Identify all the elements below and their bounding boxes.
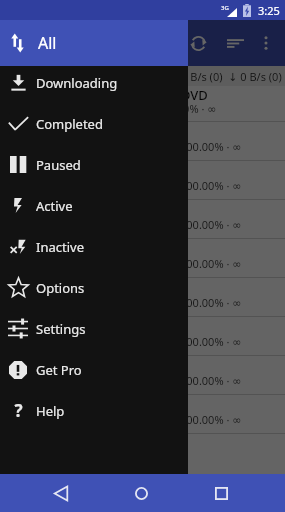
staticText: Completed [36,115,103,133]
staticText: Downloading [36,74,118,92]
staticText: Big Buck Bunny.mkv [20,166,147,184]
staticText: All [38,32,57,54]
button[interactable]: Settings [0,308,188,349]
staticText: 100.00% · ∞ [180,139,242,154]
button[interactable]: Options [0,267,188,308]
button[interactable]: Downloading [0,62,188,103]
button[interactable]: Back [21,474,101,512]
staticText: 100.00% · ∞ [180,295,242,310]
staticText: Big Buck Bunny.mkv [20,361,147,379]
staticText: Options [36,279,85,297]
staticText: ↑ 0 B/s (0) ↓ 0 B/s (0) [169,69,282,84]
button[interactable]: Big Buck Bunny.mkv [0,200,285,239]
staticText: Settings [36,320,86,338]
staticText: 100.00% · ∞ [180,217,242,232]
staticText: 100.00% · ∞ [180,334,242,349]
staticText: 3:25 [258,3,280,18]
staticText: Big Buck Bunny.mkv [20,205,147,223]
button[interactable]: Big Buck Bunny.mkv [0,356,285,395]
staticText: Big Buck Bunny.mkv [20,244,147,262]
button[interactable]: Big Buck Bunny.mkv [0,161,285,200]
staticText: Help [36,402,65,420]
button[interactable]: All [0,20,188,66]
staticText: 100.00% · ∞ [180,412,242,427]
staticText: Paused [36,156,81,174]
staticText: ? [14,399,23,422]
button[interactable]: Completed [0,103,188,144]
staticText: 100.00% · ∞ [155,101,217,116]
staticText: Get Pro [36,361,82,379]
button[interactable]: Big Buck Bunny.mkv [0,395,285,434]
button[interactable]: Get Pro [0,349,188,390]
button[interactable]: Close navigation drawer [0,20,285,474]
staticText: Big Buck Bunny.mkv [20,283,147,301]
button[interactable]: ? [0,390,188,431]
button[interactable]: Big Buck Bunny.mkv [0,278,285,317]
staticText: 100.00% · ∞ [180,178,242,193]
staticText: 100.00% · ∞ [180,373,242,388]
button[interactable]: Big Buck Bunny.mkv [0,317,285,356]
button[interactable]: Big Buck Bunny.mkv [0,122,285,161]
staticText: Inactive [36,238,84,256]
button[interactable]: Inactive [0,226,188,267]
staticText: Active [36,197,73,215]
button[interactable]: Big Buck Bunny.mkv [0,239,285,278]
staticText: 100.00% · ∞ [180,256,242,271]
staticText: Big Buck Bunny.mkv [20,400,147,418]
staticText: DVD [181,86,208,104]
button[interactable]: DVD [0,86,285,122]
button[interactable]: Sort [220,20,251,66]
staticText: Big Buck Bunny.mkv [20,127,147,145]
button[interactable]: Active [0,185,188,226]
staticText: Big Buck Bunny.mkv [20,322,147,340]
staticText: 3G [221,4,229,12]
button[interactable]: Home [101,474,181,512]
button[interactable]: Recents [181,474,261,512]
button[interactable]: More options [251,20,281,66]
button[interactable]: Paused [0,144,188,185]
button[interactable]: Refresh [176,20,220,66]
